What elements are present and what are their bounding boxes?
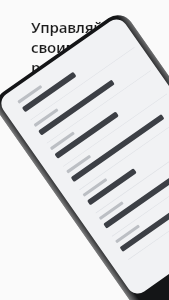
staticText: реквизитами [31, 57, 130, 77]
button[interactable]: Управляйте [31, 17, 130, 77]
staticText: Управляйте [31, 17, 119, 37]
staticText: своими [31, 37, 88, 57]
other: Phone showing bank details screen [0, 0, 169, 300]
